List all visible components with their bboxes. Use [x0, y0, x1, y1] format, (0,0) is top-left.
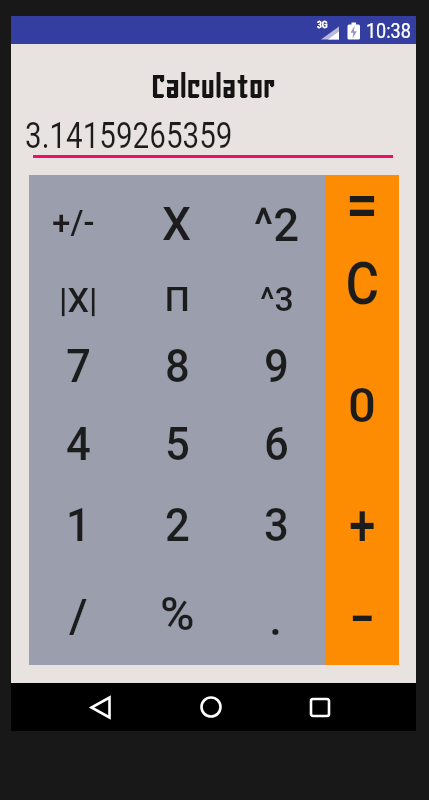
staticText: 8 — [165, 338, 190, 393]
button[interactable]: Π — [128, 263, 226, 335]
button[interactable]: 4 — [29, 407, 127, 479]
staticText: / — [69, 588, 88, 643]
button[interactable]: 3.14159265359 — [25, 114, 233, 157]
staticText: Π — [164, 279, 191, 319]
button[interactable]: / — [29, 579, 127, 651]
staticText: C — [345, 249, 379, 318]
button[interactable]: + — [325, 489, 399, 561]
staticText: 6 — [264, 416, 289, 471]
staticText: 0 — [348, 377, 376, 434]
staticText: Calculator — [151, 66, 275, 105]
button[interactable]: C — [325, 247, 399, 319]
button[interactable]: % — [128, 577, 226, 649]
button[interactable]: 1 — [29, 488, 127, 560]
button[interactable]: 9 — [227, 329, 325, 401]
button[interactable]: 6 — [227, 407, 325, 479]
button[interactable]: 8 — [128, 329, 226, 401]
staticText: Calculator — [151, 67, 275, 106]
staticText: 9 — [264, 338, 289, 393]
staticText: X — [162, 197, 192, 251]
button[interactable]: = — [325, 168, 399, 240]
staticText: = — [346, 168, 378, 240]
button[interactable] — [80, 687, 120, 727]
staticText: - — [350, 583, 375, 650]
button[interactable]: +/- — [24, 186, 122, 258]
staticText: ^3 — [260, 279, 294, 319]
button[interactable]: 7 — [29, 329, 127, 401]
staticText: . — [269, 591, 283, 646]
staticText: 1 — [66, 497, 91, 552]
staticText: 3 — [264, 497, 289, 552]
staticText: 10:38 — [366, 19, 411, 42]
staticText: 4 — [66, 416, 91, 471]
staticText: ^2 — [254, 197, 299, 252]
button[interactable]: ^3 — [228, 263, 326, 335]
button[interactable]: 0 — [325, 330, 399, 480]
staticText: % — [160, 586, 195, 641]
button[interactable]: |X| — [29, 264, 127, 336]
staticText: +/- — [52, 203, 95, 242]
button[interactable]: - — [325, 580, 399, 652]
button[interactable]: 2 — [128, 488, 226, 560]
staticText: 7 — [66, 338, 91, 393]
staticText: Calculator — [152, 66, 276, 105]
button[interactable]: 3 — [227, 488, 325, 560]
staticText: + — [349, 491, 376, 559]
button[interactable] — [300, 687, 340, 727]
button[interactable]: ^2 — [227, 188, 325, 260]
button[interactable] — [191, 687, 231, 727]
staticText: 3G — [317, 20, 328, 30]
button[interactable]: . — [227, 582, 325, 654]
staticText: 5 — [165, 416, 190, 471]
staticText: |X| — [59, 280, 98, 320]
button[interactable]: 5 — [128, 407, 226, 479]
staticText: Calculator — [150, 66, 274, 105]
staticText: 2 — [165, 497, 190, 552]
button[interactable]: X — [128, 188, 226, 260]
